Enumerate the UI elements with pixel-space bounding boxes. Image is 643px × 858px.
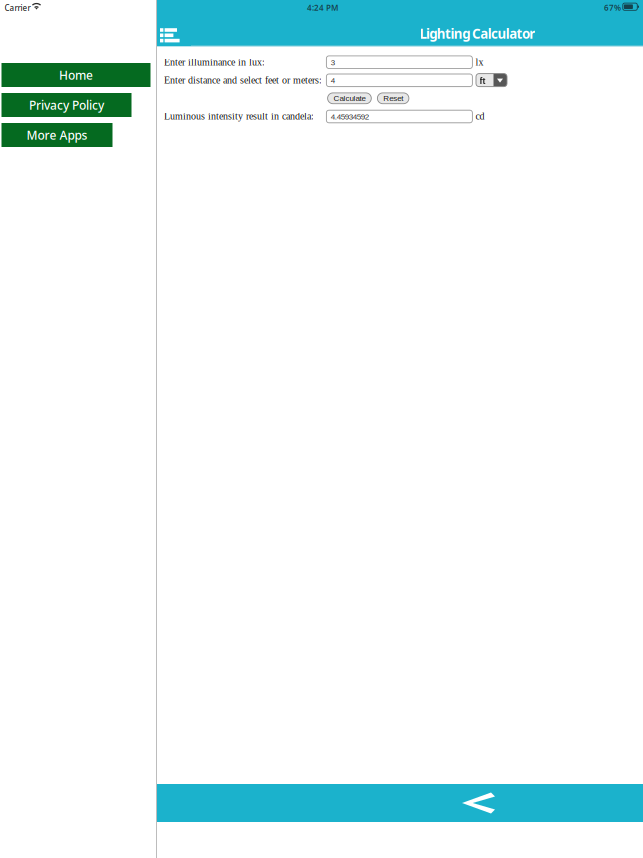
button[interactable]: Menu <box>157 23 191 46</box>
button[interactable]: 3 <box>326 56 472 68</box>
staticText: Luminous intensity result in candela: <box>164 111 314 122</box>
button[interactable]: More Apps <box>1 123 112 147</box>
staticText: 4 <box>331 76 335 85</box>
button[interactable]: 4 <box>326 74 472 87</box>
staticText: Enter distance and select feet or meters… <box>164 75 322 86</box>
button[interactable]: Home <box>1 63 150 87</box>
staticText: 4:24 PM <box>307 2 338 13</box>
button[interactable]: Unit: feet <box>476 74 507 87</box>
staticText: Reset <box>383 94 403 103</box>
button[interactable]: 4.45934592 <box>326 110 472 123</box>
button[interactable]: Calculate <box>328 93 371 104</box>
staticText: cd <box>476 111 485 122</box>
staticText: 67% <box>604 2 621 13</box>
staticText: lx <box>476 57 484 68</box>
button[interactable]: Back <box>461 791 497 815</box>
button[interactable]: Privacy Policy <box>1 93 131 117</box>
staticText: Lighting Calculator <box>419 25 535 42</box>
staticText: Calculate <box>333 94 365 103</box>
staticText: More Apps <box>26 127 87 143</box>
staticText: Carrier <box>4 3 30 13</box>
staticText: 4.45934592 <box>331 112 369 121</box>
button[interactable]: Reset <box>377 93 409 104</box>
staticText: Enter illuminance in lux: <box>164 57 265 68</box>
staticText: ft <box>479 76 485 86</box>
staticText: Privacy Policy <box>29 97 104 113</box>
staticText: Home <box>59 67 93 83</box>
staticText: 3 <box>331 58 335 67</box>
